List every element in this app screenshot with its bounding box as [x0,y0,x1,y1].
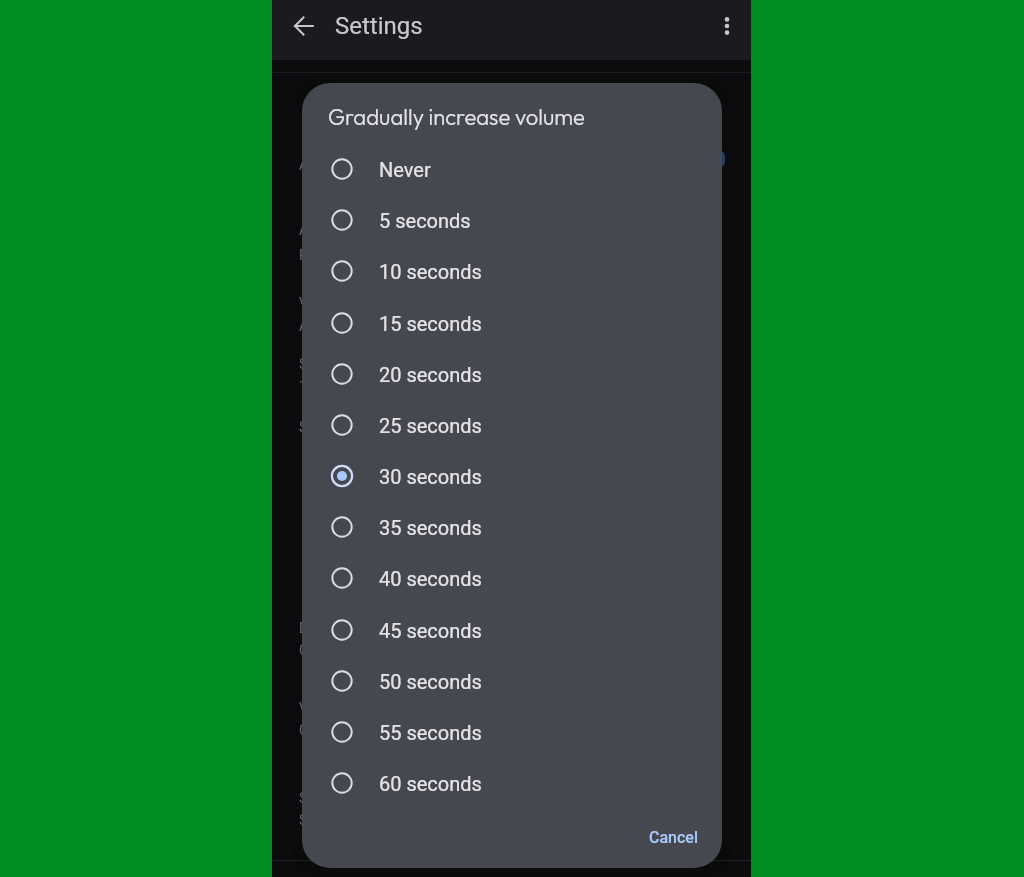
button[interactable]: 55 seconds [302,706,722,758]
button[interactable]: Cancel [637,820,710,855]
button[interactable]: 25 seconds [302,399,722,451]
staticText: 35 seconds [379,516,482,539]
staticText: 20 seconds [379,363,482,386]
staticText: Settings [335,12,423,40]
staticText: Silence after [299,419,377,435]
staticText: 40 seconds [379,567,482,590]
staticText: Sunday [299,812,345,828]
staticText: 45 seconds [379,619,482,642]
staticText: 25 seconds [379,414,482,437]
staticText: Default alarm ringtone [299,620,438,636]
staticText: 5 seconds [379,209,471,232]
button[interactable]: 30 seconds [302,450,722,502]
staticText: Alarm volume [299,157,386,173]
button[interactable]: More options [703,0,751,52]
button[interactable]: 40 seconds [302,552,722,604]
staticText: 60 seconds [379,772,482,795]
button[interactable]: Back [272,0,335,52]
staticText: Snooze length [299,356,388,372]
button[interactable]: Never [302,143,722,195]
button[interactable]: 45 seconds [302,604,722,656]
staticText: Volume buttons [299,700,398,716]
staticText: 10 seconds [379,260,482,283]
button[interactable]: 5 seconds [302,194,722,246]
staticText: Cesium [299,642,347,658]
staticText: 10 minutes [299,378,369,394]
staticText: 55 seconds [379,721,482,744]
button[interactable]: 10 seconds [302,245,722,297]
staticText: Gradually increase volume [328,103,585,131]
staticText: Never [379,158,431,181]
staticText: Controls volume [299,722,401,738]
staticText: Cancel [649,828,698,847]
staticText: Alarm volume crescendo [299,318,454,334]
staticText: 50 seconds [379,670,482,693]
staticText: Ring once [299,247,361,263]
staticText: Start week on [299,790,385,806]
button[interactable]: 35 seconds [302,501,722,553]
staticText: Vibrate for alarms [299,295,411,311]
staticText: 15 seconds [379,312,482,335]
staticText: Alarm sound [299,222,379,238]
button[interactable]: 60 seconds [302,757,722,809]
staticText: 10 minutes [299,427,369,443]
button[interactable]: 50 seconds [302,655,722,707]
button[interactable]: 20 seconds [302,348,722,400]
button[interactable]: 15 seconds [302,297,722,349]
staticText: 30 seconds [379,465,482,488]
